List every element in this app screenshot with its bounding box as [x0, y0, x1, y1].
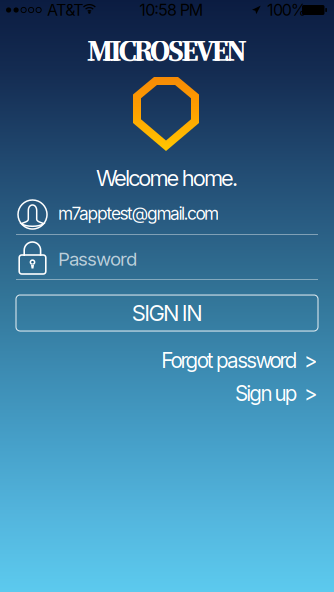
staticText: AT&T [47, 0, 83, 20]
button[interactable]: Forgot password > [16, 350, 318, 371]
staticText: Welcome home. [96, 165, 238, 191]
staticText: Password [58, 248, 137, 270]
button[interactable]: SIGN IN [16, 295, 318, 331]
staticText: Forgot password > [161, 348, 318, 373]
button[interactable]: Sign up > [16, 383, 318, 404]
staticText: MICROSEVEN [87, 30, 247, 71]
staticText: 10:58 PM [139, 0, 203, 20]
staticText: 100% [267, 0, 307, 20]
staticText: Sign up > [235, 381, 318, 406]
staticText: SIGN IN [132, 300, 202, 326]
staticText: m7apptest@gmail.com [58, 203, 219, 224]
